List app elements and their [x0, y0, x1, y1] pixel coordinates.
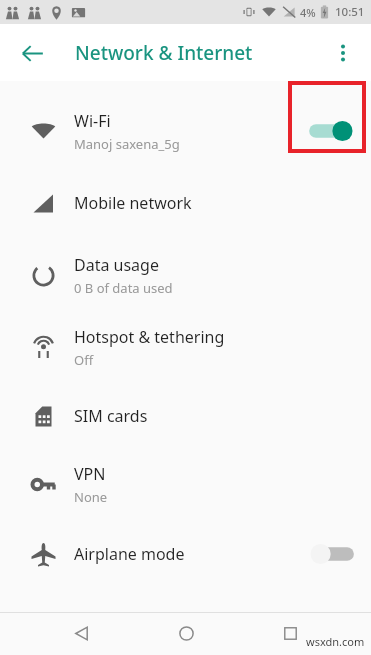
button[interactable]: Wi-Fi	[0, 95, 371, 167]
button[interactable]: Airplane mode	[0, 519, 371, 589]
button[interactable]: Data usage	[0, 239, 371, 311]
button[interactable]: Wi-Fi on	[305, 113, 357, 149]
button[interactable]: Home	[162, 612, 210, 655]
staticText: None	[74, 488, 108, 506]
button[interactable]: More options	[323, 33, 363, 73]
staticText: 10:51	[335, 4, 365, 20]
staticText: Airplane mode	[74, 543, 185, 565]
button[interactable]: VPN	[0, 449, 371, 519]
staticText: Network & Internet	[75, 40, 253, 66]
staticText: 0 B of data used	[74, 279, 173, 297]
staticText: Wi-Fi	[74, 110, 111, 132]
staticText: Off	[74, 351, 94, 369]
button[interactable]: SIM cards	[0, 383, 371, 449]
button[interactable]: Recent apps	[266, 612, 314, 655]
button[interactable]: Airplane mode off	[305, 536, 357, 572]
staticText: wsxdn.com	[306, 634, 365, 649]
button[interactable]: Mobile network	[0, 167, 371, 239]
staticText: Manoj saxena_5g	[74, 135, 180, 153]
button[interactable]: Back	[57, 612, 105, 655]
button[interactable]: Hotspot & tethering	[0, 311, 371, 383]
staticText: Mobile network	[74, 192, 192, 214]
button[interactable]: Back	[12, 33, 52, 73]
staticText: 4%	[300, 5, 316, 20]
staticText: Data usage	[74, 254, 159, 276]
staticText: VPN	[74, 463, 106, 485]
staticText: Hotspot & tethering	[74, 326, 225, 348]
staticText: SIM cards	[74, 405, 148, 427]
